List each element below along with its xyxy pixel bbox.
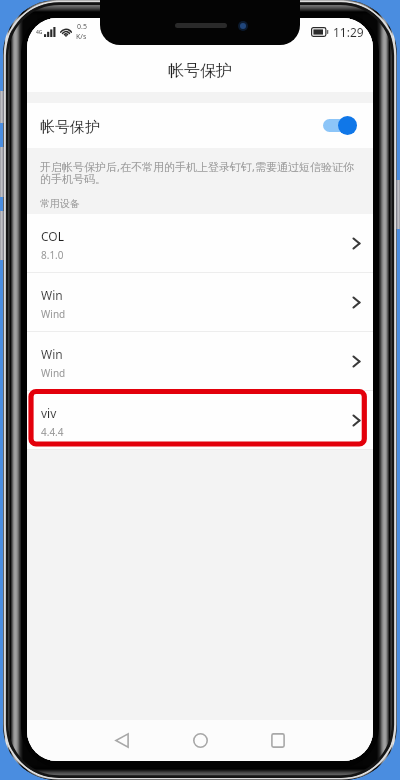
staticText: 常用设备 <box>40 197 80 210</box>
button[interactable]: Back <box>100 720 144 761</box>
button[interactable]: COL <box>27 214 373 273</box>
staticText: Win <box>41 287 63 303</box>
button[interactable]: Account protection toggle <box>323 116 357 135</box>
staticText: 0.5 <box>77 22 87 32</box>
staticText: 11:29 <box>333 24 364 40</box>
staticText: 帐号保护 <box>40 118 100 137</box>
button[interactable]: Home <box>178 720 222 761</box>
staticText: Win <box>41 346 63 362</box>
button[interactable]: Win <box>27 332 373 391</box>
staticText: Wind <box>41 307 66 321</box>
staticText: 开启帐号保护后,在不常用的手机上登录钉钉,需要通过短信验证你 的手机号码。 <box>40 159 354 186</box>
button[interactable]: Recent apps <box>256 720 300 761</box>
staticText: Wind <box>41 366 66 380</box>
staticText: 8.1.0 <box>41 248 64 262</box>
button[interactable]: viv <box>27 391 373 450</box>
button[interactable]: Win <box>27 273 373 332</box>
staticText: viv <box>41 405 57 421</box>
button[interactable]: 帐号保护 <box>27 103 373 148</box>
staticText: K/s <box>76 32 87 42</box>
staticText: 4G <box>36 29 43 36</box>
staticText: 帐号保护 <box>168 61 232 81</box>
staticText: COL <box>41 228 65 244</box>
staticText: 4.4.4 <box>41 425 64 439</box>
